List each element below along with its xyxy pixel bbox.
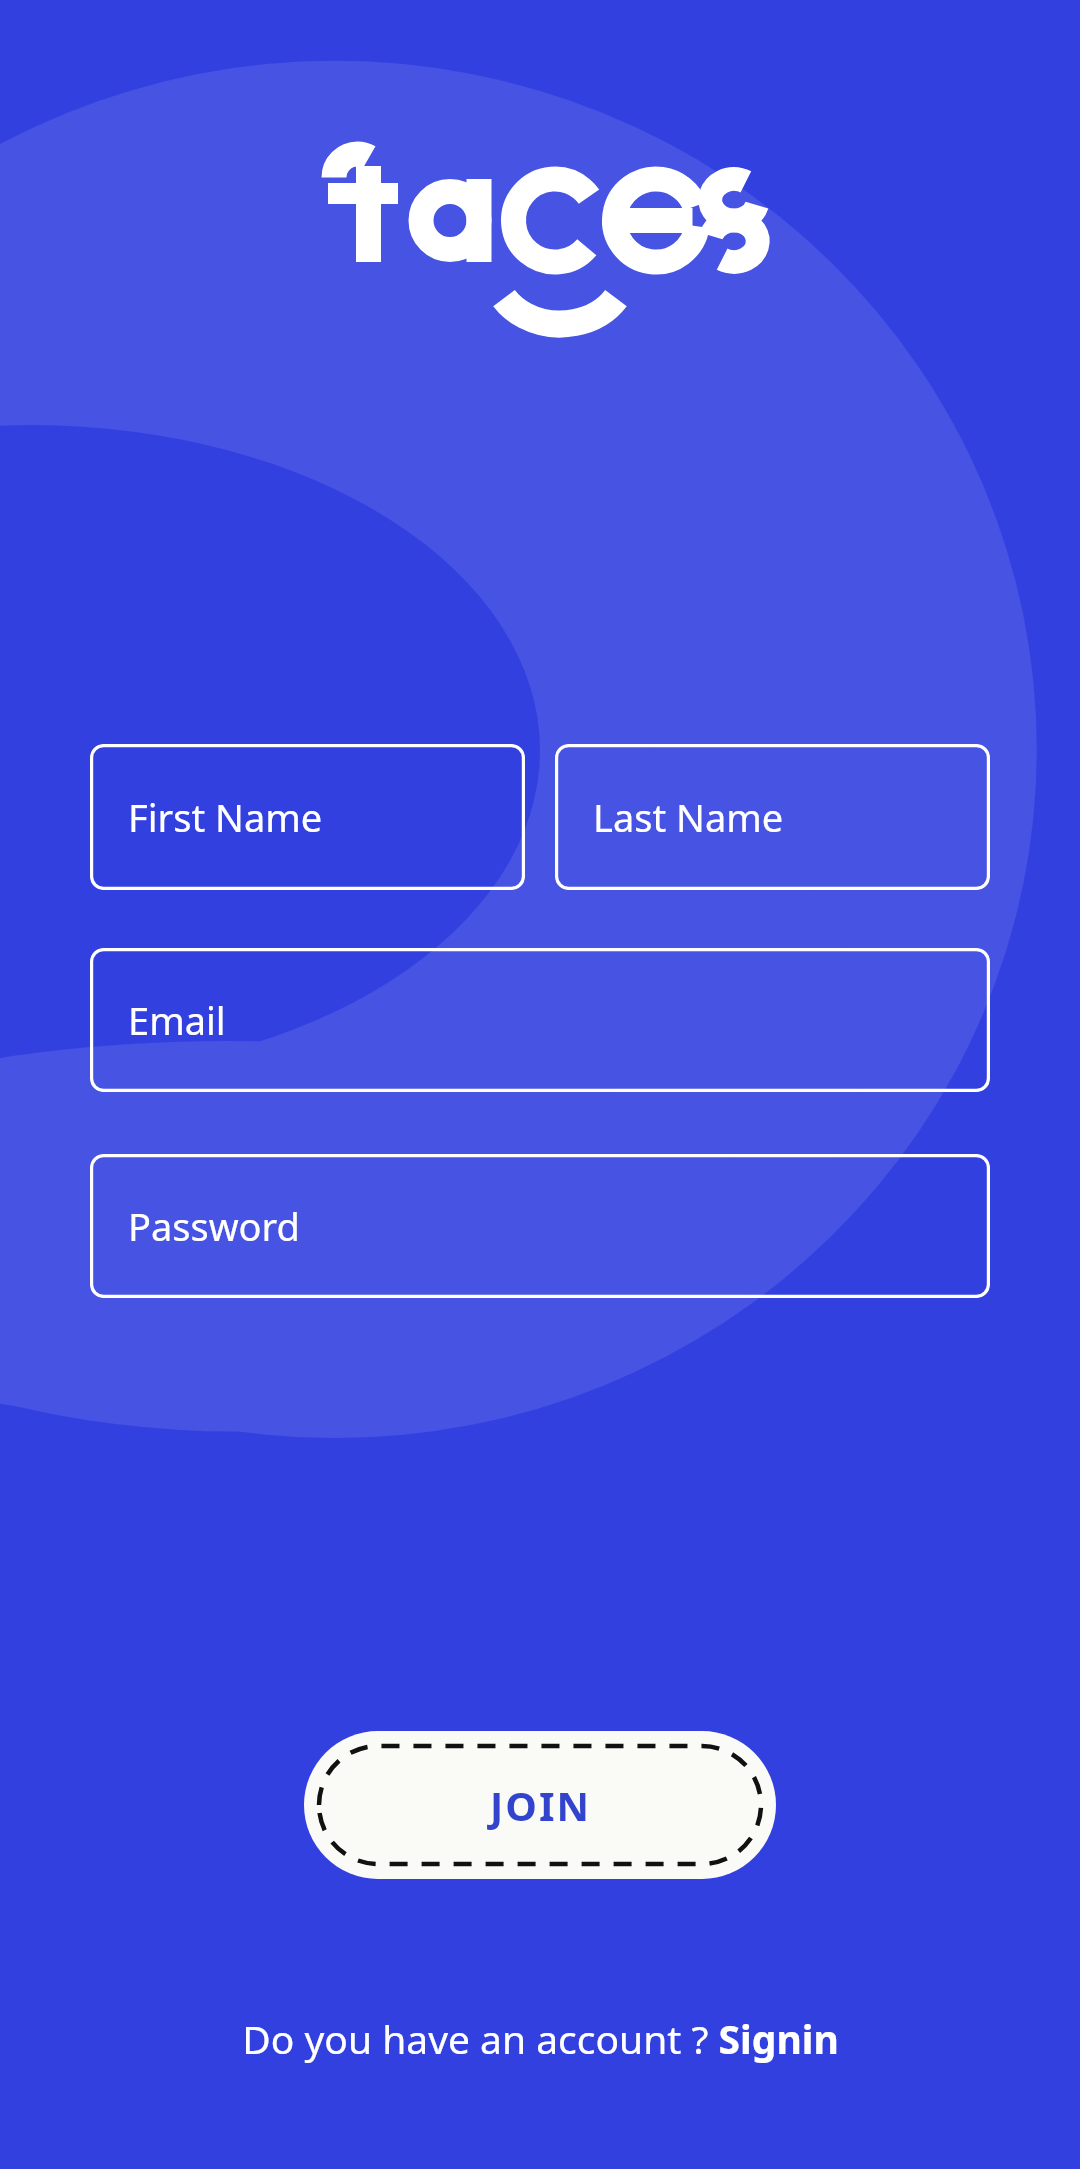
button[interactable]: First Name bbox=[90, 744, 525, 890]
button[interactable]: Last Name bbox=[555, 744, 990, 890]
button[interactable]: Password bbox=[90, 1154, 990, 1298]
button[interactable]: JOIN bbox=[304, 1731, 776, 1879]
staticText: JOIN bbox=[490, 1778, 591, 1832]
button[interactable]: Email bbox=[90, 948, 990, 1092]
staticText: Last Name bbox=[593, 791, 784, 843]
staticText: Do you have an account ? Signin bbox=[242, 2012, 839, 2065]
button[interactable]: Do you have an account ? Signin bbox=[228, 2004, 853, 2073]
staticText: Password bbox=[128, 1200, 300, 1252]
other: faces logo bbox=[322, 140, 758, 318]
staticText: First Name bbox=[128, 791, 323, 843]
staticText: Email bbox=[128, 994, 226, 1046]
